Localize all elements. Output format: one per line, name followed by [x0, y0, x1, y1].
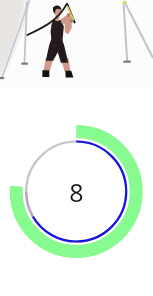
button[interactable] [0, 0, 153, 88]
button[interactable]: 8 [46, 161, 107, 222]
staticText: 8 [69, 175, 84, 209]
